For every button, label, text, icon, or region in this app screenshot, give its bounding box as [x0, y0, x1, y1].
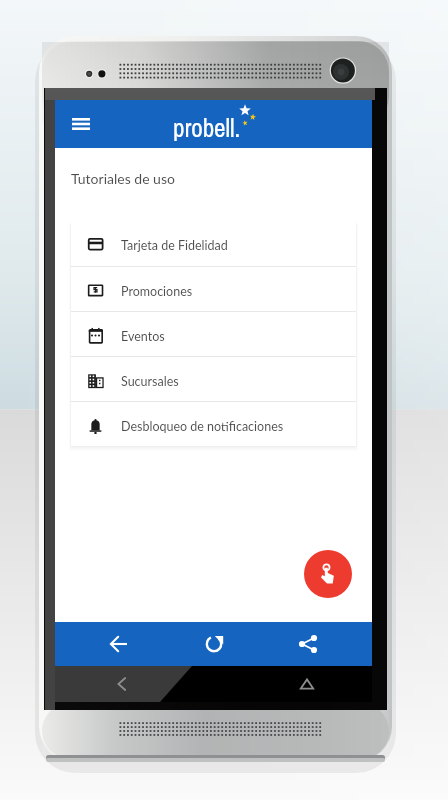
button[interactable]: Promociones: [71, 267, 356, 311]
staticText: Promociones: [121, 284, 193, 299]
staticText: Tutoriales de uso: [71, 170, 175, 187]
staticText: Tarjeta de Fidelidad: [121, 238, 228, 253]
button[interactable]: Tarjeta de Fidelidad: [71, 221, 356, 266]
button[interactable]: Sucursales: [71, 357, 356, 401]
button[interactable]: Menu: [63, 106, 99, 142]
button[interactable]: Eventos: [71, 312, 356, 356]
staticText: Sucursales: [121, 374, 179, 389]
button[interactable]: Refresh: [184, 622, 244, 666]
staticText: probell.: [173, 111, 241, 145]
staticText: Eventos: [121, 329, 165, 344]
button[interactable]: Share: [278, 622, 338, 666]
staticText: Desbloqueo de notificaciones: [121, 419, 284, 434]
button[interactable]: Back: [89, 622, 149, 666]
button[interactable]: Desbloqueo de notificaciones: [71, 402, 356, 446]
button[interactable]: Tutorial: [304, 550, 352, 598]
